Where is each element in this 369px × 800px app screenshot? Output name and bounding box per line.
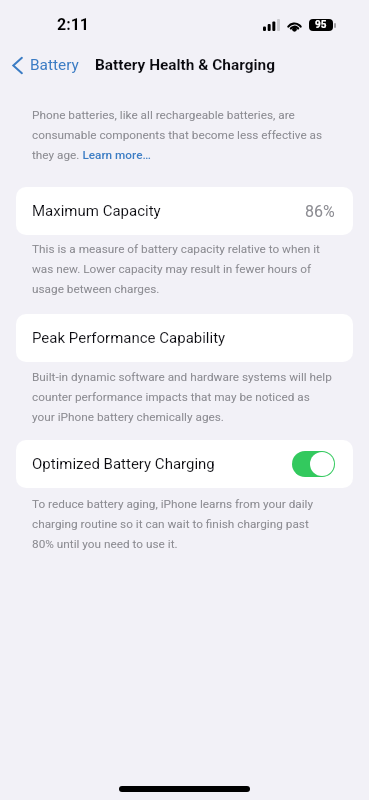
button[interactable]: Peak Performance Capability	[16, 314, 353, 362]
staticText: To reduce battery aging, iPhone learns f…	[32, 492, 314, 552]
button[interactable]: Maximum Capacity	[16, 187, 353, 235]
staticText: 95	[315, 19, 327, 31]
staticText: 86%	[305, 202, 335, 221]
staticText: Maximum Capacity	[32, 202, 161, 220]
staticText: Optimized Battery Charging	[32, 455, 215, 473]
button[interactable]: Optimized Battery Charging	[16, 440, 353, 488]
staticText: Built-in dynamic software and hardware s…	[32, 365, 332, 425]
staticText: Battery	[30, 56, 79, 74]
staticText: Phone batteries, like all rechargeable b…	[32, 103, 323, 163]
staticText: This is a measure of battery capacity re…	[32, 237, 320, 297]
button[interactable]: Optimized Battery Charging	[292, 451, 335, 477]
staticText: 2:11	[57, 15, 90, 34]
staticText: Peak Performance Capability	[32, 329, 226, 347]
button[interactable]: Battery	[0, 49, 87, 78]
staticText: Battery Health & Charging	[95, 56, 275, 74]
